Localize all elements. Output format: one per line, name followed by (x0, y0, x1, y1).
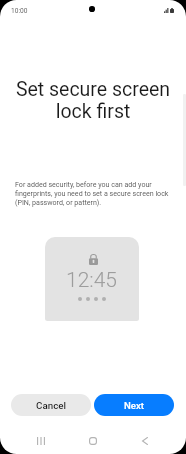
button[interactable]: Next (94, 394, 174, 416)
button[interactable]: Cancel (11, 394, 91, 416)
button[interactable]: Back (128, 430, 161, 452)
staticText: Cancel (36, 400, 67, 411)
button[interactable]: Recent apps (24, 430, 57, 452)
staticText: 12:45 (66, 268, 118, 293)
staticText: 10:00 (11, 7, 28, 15)
staticText: For added security, before you can add y… (15, 180, 170, 207)
button[interactable]: Home (76, 430, 109, 452)
staticText: Next (124, 400, 144, 411)
staticText: Set secure screen lock first (14, 78, 172, 123)
